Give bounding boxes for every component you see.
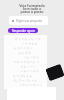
button[interactable]: Responder agora xyxy=(8,28,38,33)
staticText: Veja formatado com tudo o passo a passo xyxy=(19,3,45,14)
staticText: Digite sua pergunta xyxy=(16,19,43,23)
staticText: Responder agora xyxy=(12,29,35,33)
button[interactable]: Digite sua pergunta xyxy=(9,16,48,25)
